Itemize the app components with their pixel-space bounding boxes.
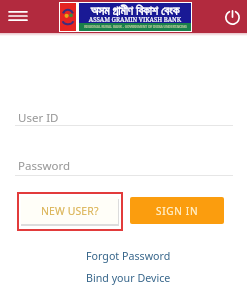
staticText: User ID — [18, 110, 59, 126]
staticText: ASSAM GRAMIN VIKASH BANK — [79, 15, 191, 23]
staticText: Forgot Password — [86, 249, 171, 264]
staticText: NEW USER? — [41, 204, 99, 218]
staticText: REGIONAL RURAL BANK - GOVERNMENT OF INDI… — [84, 25, 187, 29]
button[interactable]: Menu — [2, 0, 34, 32]
staticText: অসম গ্ৰামীণ বিকাশ বেংক — [79, 2, 191, 18]
button[interactable]: Bind your Device — [84, 271, 172, 286]
button[interactable]: SIGN IN — [130, 197, 224, 224]
button[interactable]: NEW USER? — [17, 192, 123, 231]
button[interactable]: Forgot Password — [84, 249, 172, 264]
staticText: Bind your Device — [86, 271, 171, 286]
staticText: SIGN IN — [156, 204, 199, 218]
button[interactable]: Logout — [217, 2, 247, 32]
staticText: Password — [18, 158, 71, 174]
